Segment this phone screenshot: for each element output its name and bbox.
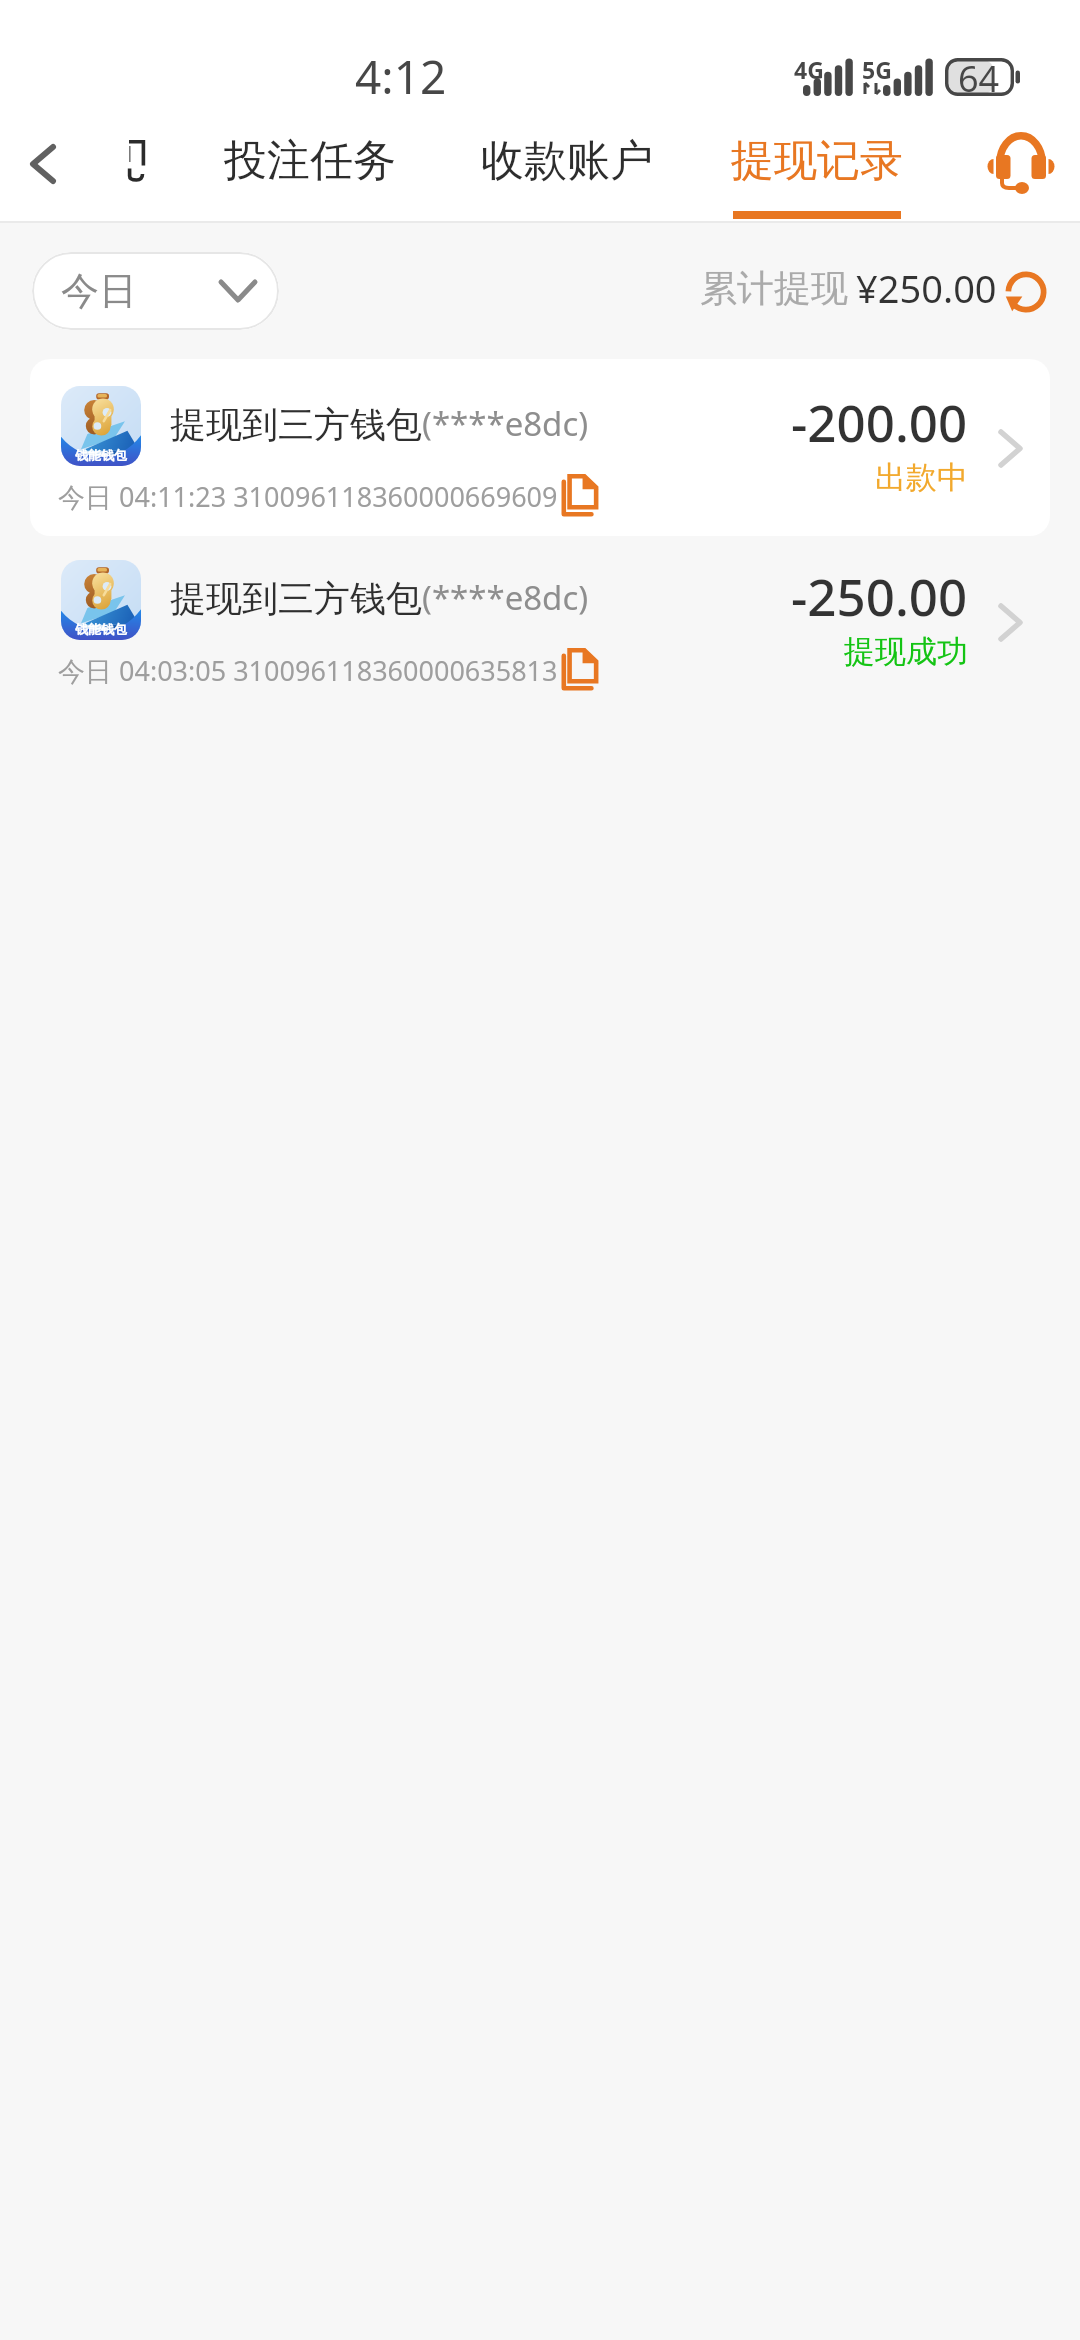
- button[interactable]: Copy: [553, 644, 608, 694]
- staticText: 投注任务: [224, 134, 396, 188]
- staticText: 今日 04:11:23 310096118360000669609: [58, 478, 558, 515]
- button[interactable]: 钱能钱包: [30, 359, 1050, 536]
- button[interactable]: 钱能钱包: [30, 533, 1050, 710]
- staticText: 64: [958, 54, 1000, 103]
- staticText: 钱能钱包: [75, 621, 127, 637]
- button[interactable]: Refresh: [1000, 266, 1052, 318]
- staticText: 4:12: [355, 45, 447, 108]
- button[interactable]: 提现记录: [728, 112, 905, 221]
- button[interactable]: Customer service: [965, 112, 1077, 221]
- button[interactable]: Previous tab: [100, 112, 160, 221]
- button[interactable]: 收款账户: [478, 112, 655, 221]
- button[interactable]: 投注任务: [221, 112, 398, 221]
- staticText: 提现记录: [731, 134, 903, 188]
- button[interactable]: 今日: [32, 252, 279, 330]
- staticText: -250.00: [791, 561, 968, 630]
- staticText: 累计提现: [700, 265, 848, 312]
- staticText: ¥250.00: [856, 262, 997, 314]
- staticText: (****e8dc): [422, 401, 589, 446]
- button[interactable]: Copy: [553, 470, 608, 520]
- staticText: (****e8dc): [422, 575, 589, 620]
- staticText: 4G: [794, 54, 824, 85]
- staticText: 提现成功: [844, 632, 968, 671]
- staticText: 今日 04:03:05 310096118360000635813: [58, 652, 558, 689]
- button[interactable]: Back: [0, 112, 86, 221]
- staticText: -200.00: [791, 387, 968, 456]
- staticText: 提现到三方钱包: [170, 576, 422, 621]
- staticText: 今日: [61, 267, 137, 315]
- staticText: 5G: [862, 54, 892, 85]
- staticText: 提现到三方钱包: [170, 402, 422, 447]
- staticText: 出款中: [875, 458, 968, 497]
- staticText: 收款账户: [481, 134, 653, 188]
- staticText: 钱能钱包: [75, 447, 127, 463]
